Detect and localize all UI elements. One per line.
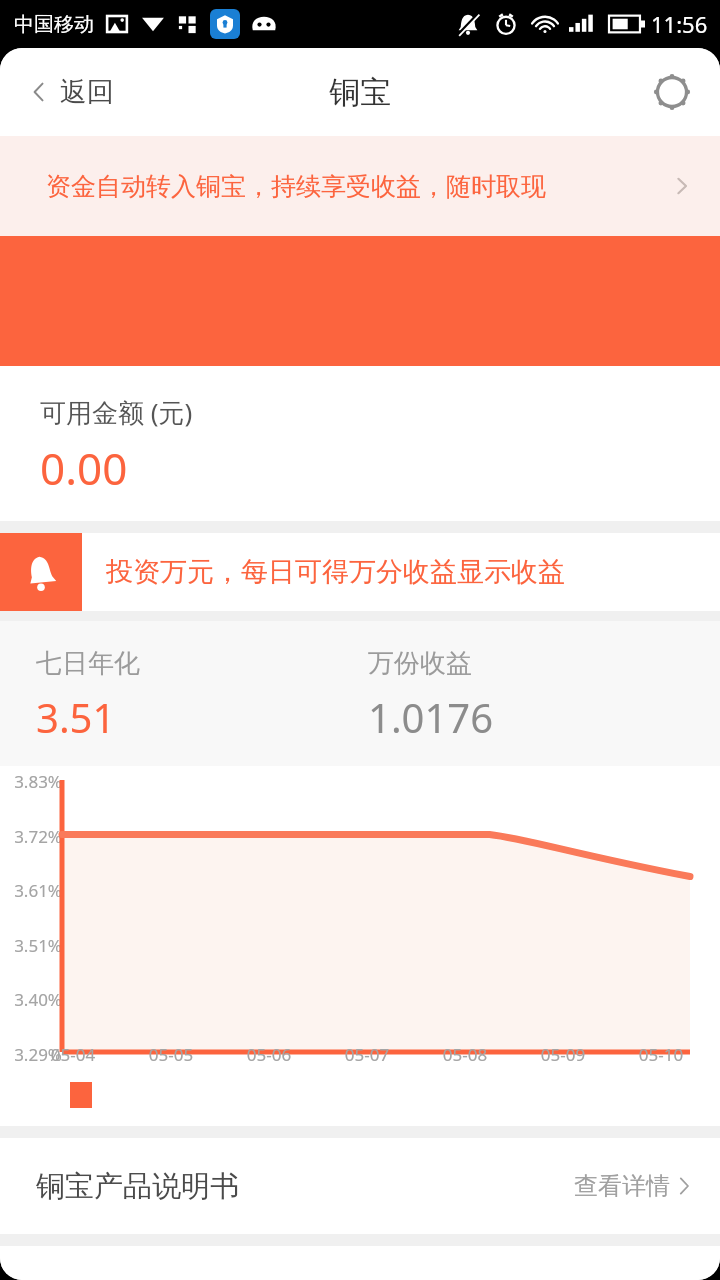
button[interactable]: Settings	[640, 60, 704, 124]
staticText: 05-06	[220, 1043, 318, 1066]
staticText: 投资万元，每日可得万分收益显示收益	[106, 555, 565, 589]
staticText: 查看详情	[574, 1171, 670, 1201]
staticText: 05-10	[612, 1043, 710, 1066]
button[interactable]: 资金自动转入铜宝，持续享受收益，随时取现	[0, 136, 720, 236]
staticText: 1.0176	[368, 690, 494, 744]
staticText: 11:56	[651, 9, 708, 39]
staticText: 05-07	[318, 1043, 416, 1066]
staticText: 3.83%	[0, 770, 62, 793]
staticText: 05-05	[122, 1043, 220, 1066]
staticText: 3.51%	[0, 934, 62, 957]
staticText: 七日年化	[36, 647, 140, 680]
button[interactable]: 投资万元，每日可得万分收益显示收益	[0, 533, 720, 611]
staticText: 05-04	[24, 1043, 122, 1066]
staticText: 3.51	[36, 690, 116, 744]
staticText: 3.40%	[0, 988, 62, 1011]
staticText: 返回	[60, 75, 114, 109]
staticText: 资金自动转入铜宝，持续享受收益，随时取现	[46, 171, 546, 202]
button[interactable]: 返回	[20, 67, 122, 117]
staticText: 3.61%	[0, 879, 62, 902]
staticText: 可用金额 (元)	[40, 394, 193, 430]
staticText: 05-09	[514, 1043, 612, 1066]
staticText: 05-08	[416, 1043, 514, 1066]
staticText: 铜宝产品说明书	[36, 1168, 239, 1205]
staticText: 中国移动	[14, 12, 94, 37]
staticText: 0.00	[36, 142, 163, 229]
button[interactable]: 铜宝产品说明书	[0, 1138, 720, 1234]
staticText: 铜宝	[329, 73, 391, 112]
staticText: 3.72%	[0, 825, 62, 848]
staticText: 万份收益	[368, 647, 472, 680]
staticText: 3.29%	[0, 1043, 62, 1066]
staticText: 0.00	[40, 438, 128, 498]
